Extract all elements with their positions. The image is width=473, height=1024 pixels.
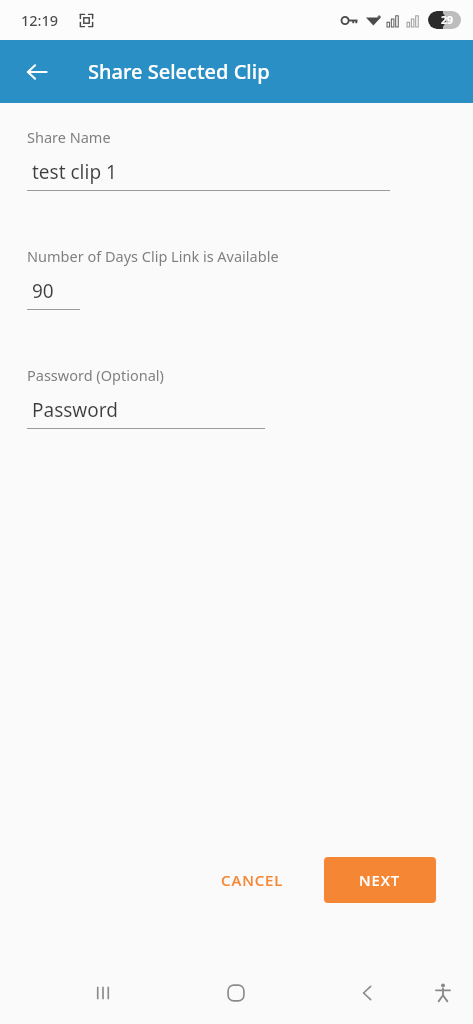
button[interactable]: Home — [213, 970, 259, 1016]
button[interactable]: Recents — [80, 970, 126, 1016]
button[interactable]: CANCEL — [205, 860, 300, 900]
staticText: Password — [32, 397, 118, 423]
staticText: test clip 1 — [32, 159, 117, 185]
button[interactable]: Accessibility — [420, 970, 466, 1016]
button[interactable]: Back — [345, 970, 391, 1016]
staticText: 90 — [32, 278, 54, 304]
staticText: 12:19 — [21, 10, 59, 30]
staticText: NEXT — [359, 870, 401, 890]
staticText: Password (Optional) — [27, 365, 164, 385]
staticText: 29 — [441, 13, 454, 27]
staticText: CANCEL — [221, 870, 284, 890]
staticText: Number of Days Clip Link is Available — [27, 246, 279, 266]
staticText: Share Name — [27, 127, 111, 147]
button[interactable]: NEXT — [324, 857, 436, 903]
staticText: Share Selected Clip — [88, 58, 270, 85]
button[interactable]: Back — [14, 49, 60, 95]
